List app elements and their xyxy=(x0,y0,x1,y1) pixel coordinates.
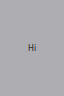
staticText: Hi xyxy=(28,43,36,53)
